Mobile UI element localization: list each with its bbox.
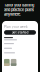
button[interactable]: Get started bbox=[4, 30, 36, 35]
staticText: Plan your week bbox=[4, 25, 28, 29]
staticText: Tailor your training and practice plans … bbox=[4, 3, 34, 17]
staticText: Get started bbox=[11, 30, 28, 34]
